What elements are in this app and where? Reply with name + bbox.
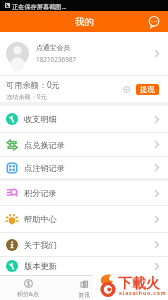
button[interactable]: 版本更新 [0,257,168,275]
button[interactable]: 资讯 [56,276,112,300]
staticText: 点通宝会员 [36,43,70,52]
staticText: xiazaihuo.com [119,290,167,297]
button[interactable]: 提现 [136,84,159,95]
staticText: 关于我们 [24,240,57,250]
staticText: 冻结余额：0元 [6,92,47,100]
button[interactable]: 我的 [112,276,168,300]
button[interactable]: 点注销记录 [0,157,168,178]
button[interactable]: Help [123,86,130,93]
staticText: 我的 [75,16,94,28]
staticText: 资讯 [78,291,90,298]
staticText: 我的 [134,291,146,298]
staticText: 版本更新 [24,261,57,271]
button[interactable]: 收支明细 [0,106,168,133]
button[interactable]: 点通宝会员 [0,32,168,75]
staticText: 点兑换记录 [24,140,65,150]
button[interactable]: 积分和点 [0,276,56,300]
staticText: 帮助中心 [24,214,57,224]
staticText: 正在保存屏幕截图... [12,2,67,10]
staticText: 积分记录 [24,188,57,198]
staticText: 收支明细 [24,114,57,124]
staticText: 下載火 [118,275,160,293]
staticText: 可用余额：0元 [6,79,60,90]
button[interactable]: 积分记录 [0,181,168,206]
staticText: 18210236987 [36,55,77,64]
button[interactable]: 点兑换记录 [0,133,168,157]
button[interactable]: 关于我们 [0,233,168,257]
button[interactable]: Messages [148,16,160,28]
staticText: 提现 [140,85,155,94]
button[interactable]: 帮助中心 [0,206,168,233]
staticText: 积分&点 [17,290,39,298]
staticText: 点注销记录 [24,163,65,173]
